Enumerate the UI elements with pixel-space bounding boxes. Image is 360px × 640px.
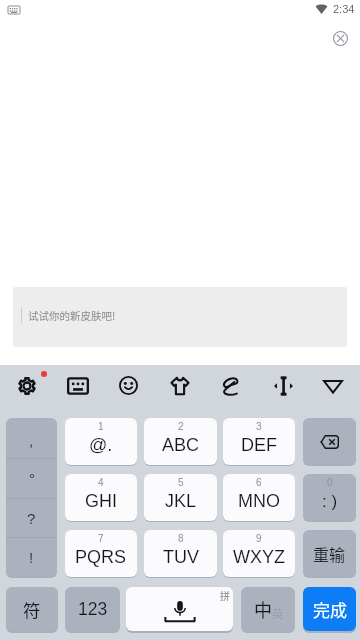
button[interactable]: 8 — [144, 530, 217, 577]
button[interactable]: 9 — [223, 530, 295, 577]
staticText: WXYZ — [233, 547, 285, 567]
button[interactable]: 完成 — [303, 587, 356, 631]
staticText: 4 — [98, 477, 104, 488]
staticText: 8 — [178, 533, 184, 544]
staticText: 9 — [256, 533, 262, 544]
staticText: 符 — [23, 597, 41, 622]
button[interactable]: Space, voice input — [126, 587, 233, 631]
button[interactable]: ° — [6, 458, 57, 498]
staticText: 3 — [256, 421, 262, 432]
button[interactable]: Emoji — [107, 365, 149, 406]
staticText: TUV — [163, 547, 199, 567]
staticText: 2:34 — [333, 3, 355, 15]
staticText: 重输 — [313, 542, 346, 565]
staticText: 试试你的新皮肤吧! — [28, 308, 116, 323]
button[interactable]: 重输 — [303, 530, 356, 577]
button[interactable]: 6 — [223, 474, 295, 521]
staticText: ? — [27, 510, 36, 527]
button[interactable]: 符 — [6, 587, 58, 631]
button[interactable]: 5 — [144, 474, 217, 521]
staticText: 6 — [256, 477, 262, 488]
button[interactable]: 123 — [65, 587, 120, 631]
button[interactable]: 2 — [144, 418, 217, 465]
staticText: PQRS — [75, 547, 127, 567]
staticText: ABC — [162, 435, 200, 455]
staticText: GHI — [85, 491, 118, 511]
button[interactable]: Close — [326, 24, 354, 52]
staticText: MNO — [238, 491, 280, 511]
staticText: 0 — [327, 477, 333, 488]
staticText: 2 — [178, 421, 184, 432]
button[interactable]: Hide keyboard — [312, 365, 354, 406]
staticText: DEF — [241, 435, 277, 455]
staticText: 英 — [272, 605, 283, 621]
button[interactable]: , — [6, 418, 57, 458]
button[interactable]: Handwriting — [209, 365, 251, 406]
button[interactable]: 7 — [65, 530, 137, 577]
staticText: , — [29, 432, 34, 449]
button[interactable]: 0 — [303, 474, 356, 521]
staticText: ° — [29, 470, 35, 487]
button[interactable]: Settings — [6, 365, 48, 406]
staticText: 123 — [78, 599, 108, 619]
staticText: 1 — [98, 421, 104, 432]
staticText: 拼 — [220, 588, 230, 602]
button[interactable]: 4 — [65, 474, 137, 521]
button[interactable]: 3 — [223, 418, 295, 465]
staticText: JKL — [165, 491, 197, 511]
button[interactable]: Symbol keyboard — [57, 365, 99, 406]
button[interactable]: Backspace — [303, 418, 356, 465]
staticText: 完成 — [313, 597, 347, 622]
staticText: @. — [89, 435, 113, 455]
button[interactable]: 试试你的新皮肤吧! — [13, 287, 347, 347]
staticText: : ) — [322, 492, 338, 511]
staticText: 7 — [98, 533, 104, 544]
button[interactable]: ! — [6, 537, 57, 577]
button[interactable]: 1 — [65, 418, 137, 465]
button[interactable]: Move cursor — [262, 365, 304, 406]
staticText: 5 — [178, 477, 184, 488]
button[interactable]: 中 — [241, 587, 295, 631]
staticText: ! — [29, 549, 34, 566]
button[interactable]: Theme — [159, 365, 201, 406]
staticText: 中 — [254, 596, 272, 622]
button[interactable]: ? — [6, 498, 57, 538]
